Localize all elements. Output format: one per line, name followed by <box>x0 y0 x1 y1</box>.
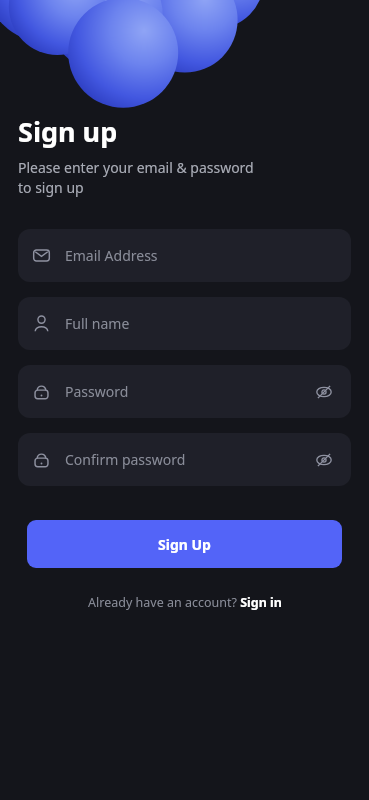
button[interactable]: Toggle password visibility <box>311 379 337 405</box>
button[interactable]: Password <box>18 365 351 418</box>
button[interactable]: Full name <box>18 297 351 350</box>
button[interactable]: Email Address <box>18 229 351 282</box>
staticText: Sign Up <box>158 535 211 554</box>
staticText: Email Address <box>65 246 158 265</box>
staticText: Already have an account? Sign in <box>88 594 282 611</box>
staticText: Full name <box>65 314 130 333</box>
staticText: Sign up <box>18 113 118 150</box>
staticText: Please enter your email & password to si… <box>18 158 254 197</box>
staticText: Password <box>65 382 129 401</box>
button[interactable]: Sign Up <box>27 520 342 568</box>
staticText: Confirm password <box>65 450 186 469</box>
button[interactable]: Toggle password visibility <box>311 447 337 473</box>
button[interactable]: Already have an account? Sign in <box>82 591 288 614</box>
button[interactable]: Confirm password <box>18 433 351 486</box>
